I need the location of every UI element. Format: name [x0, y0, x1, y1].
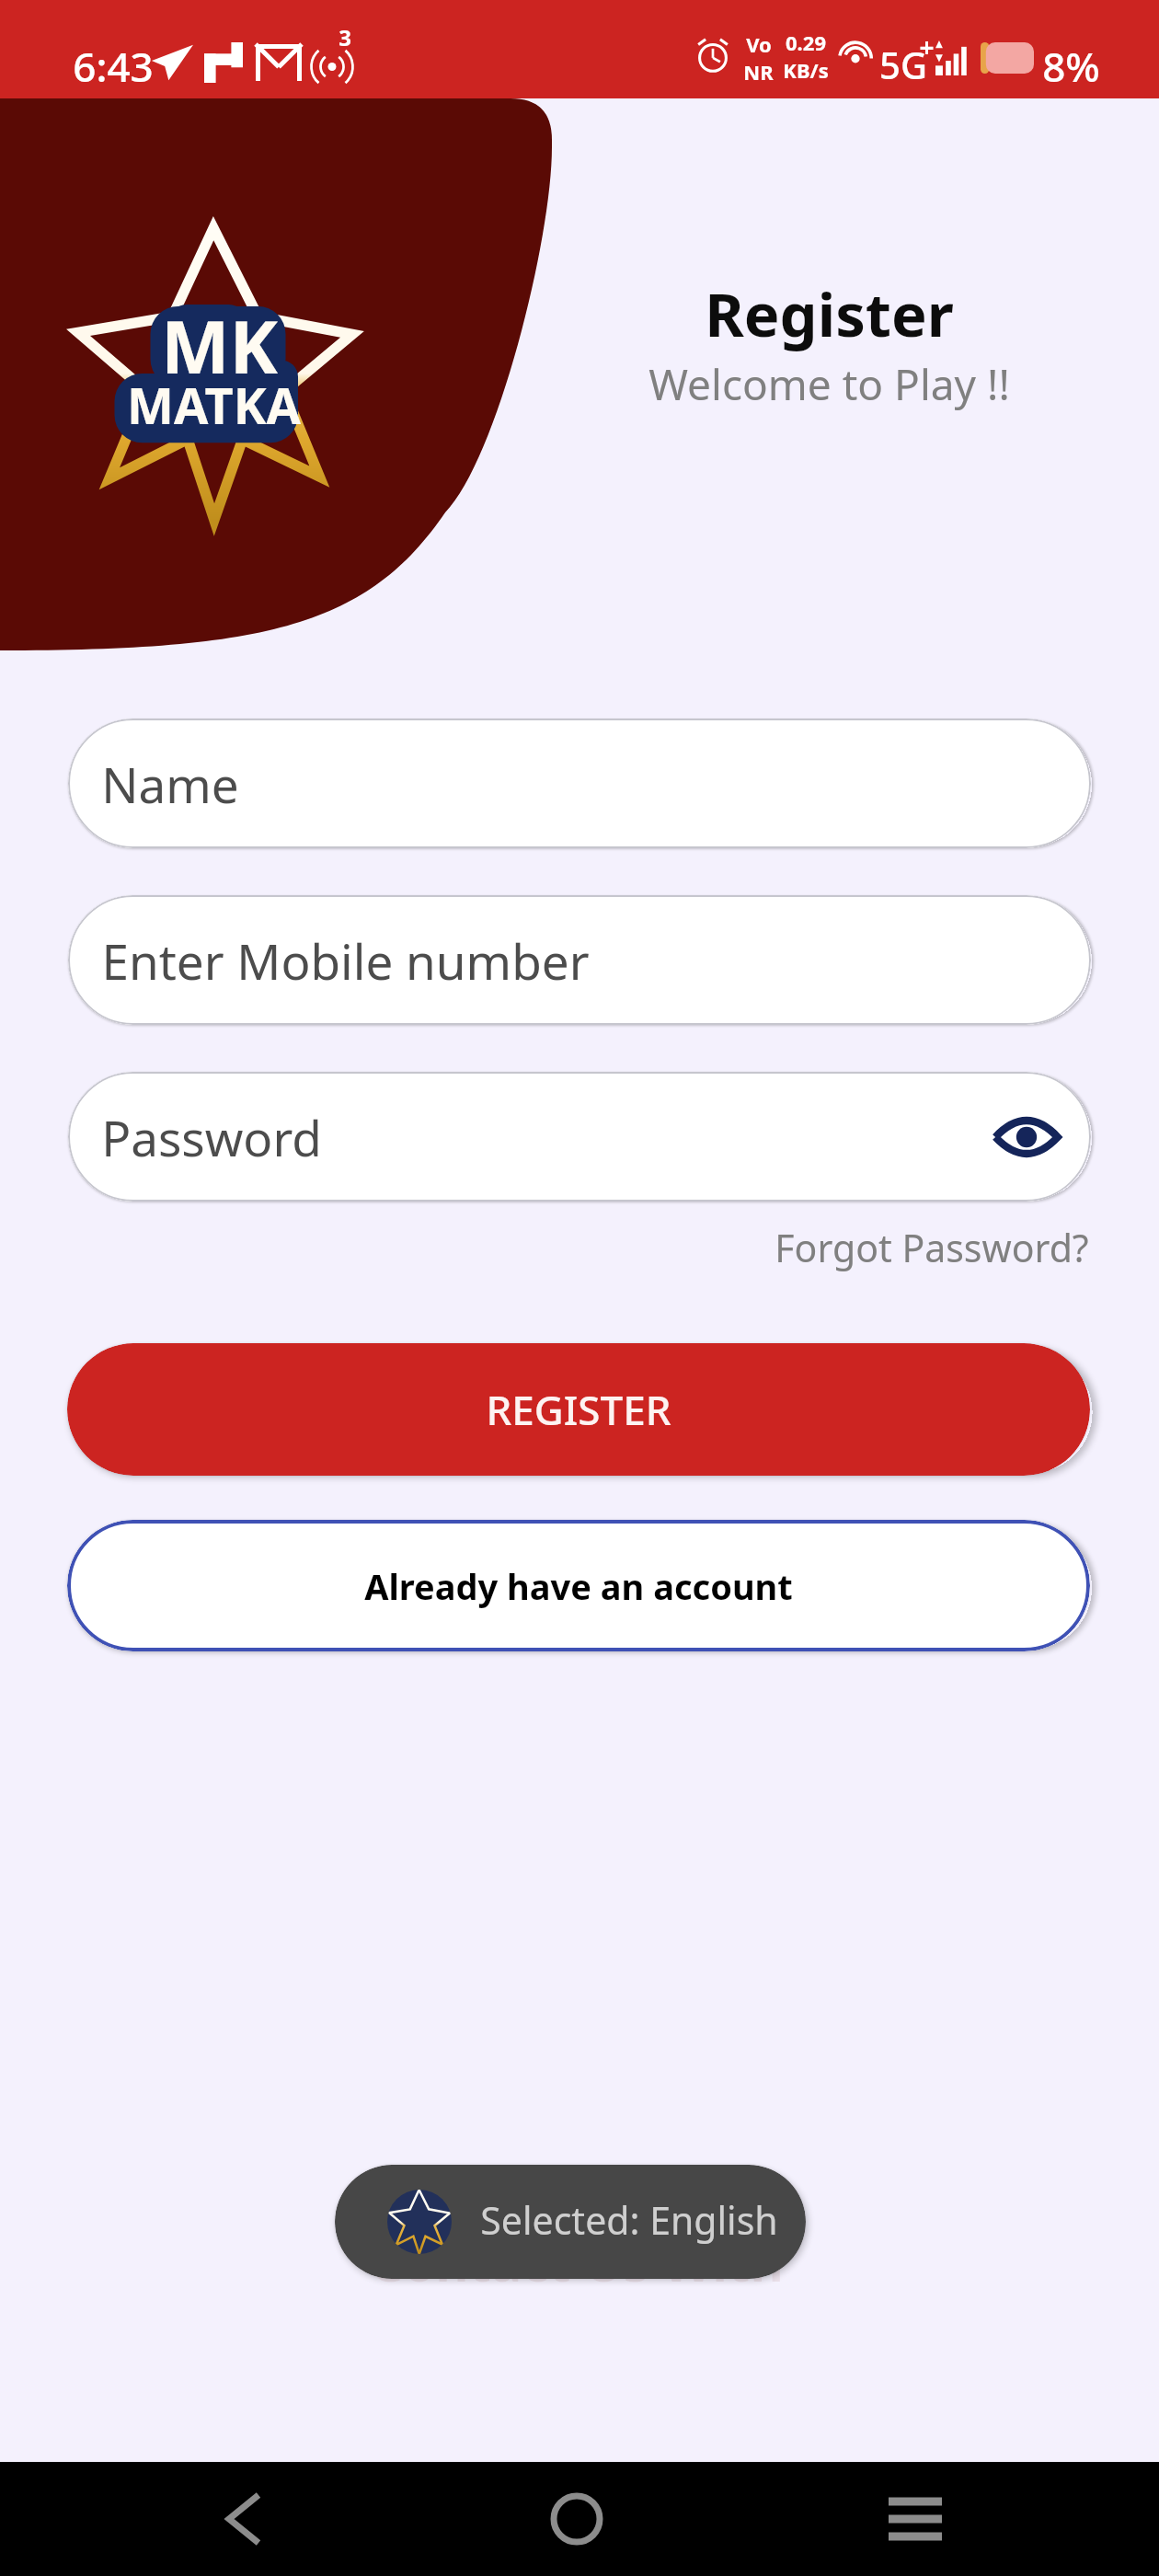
staticText: Welcome to Play !!	[648, 355, 1010, 413]
staticText: Enter Mobile number	[101, 927, 590, 994]
button[interactable]: Home	[522, 2471, 632, 2567]
staticText: 3	[339, 22, 351, 52]
staticText: MATKA	[127, 371, 301, 439]
staticText: Forgot Password?	[775, 1222, 1089, 1273]
staticText: Contact Us With	[370, 2226, 784, 2296]
staticText: Selected: English	[480, 2194, 778, 2246]
staticText: 5G	[879, 40, 927, 89]
staticText: KB/s	[783, 56, 829, 84]
staticText: Name	[101, 751, 239, 817]
staticText: Already have an account	[364, 1562, 793, 1610]
button[interactable]: Enter Mobile number	[68, 895, 1091, 1025]
staticText: 0.29	[786, 29, 826, 56]
button[interactable]: Selected: English	[335, 2165, 806, 2279]
button[interactable]: Name	[68, 719, 1091, 848]
button[interactable]: Forgot Password?	[773, 1214, 1091, 1281]
button[interactable]: Show password	[993, 1114, 1060, 1160]
staticText: Password	[101, 1104, 322, 1170]
button[interactable]: Already have an account	[67, 1520, 1090, 1651]
staticText: Vo	[746, 30, 772, 58]
staticText: REGISTER	[486, 1382, 671, 1437]
button[interactable]: REGISTER	[67, 1343, 1090, 1476]
button[interactable]: Password	[68, 1072, 1091, 1202]
button[interactable]: Recents	[860, 2471, 970, 2567]
staticText: 8%	[1042, 39, 1100, 94]
staticText: NR	[743, 58, 774, 86]
button[interactable]: Back	[188, 2471, 298, 2567]
staticText: 6:43	[73, 39, 154, 94]
staticText: MK	[161, 296, 278, 396]
staticText: +	[919, 29, 935, 64]
staticText: Register	[705, 273, 954, 355]
